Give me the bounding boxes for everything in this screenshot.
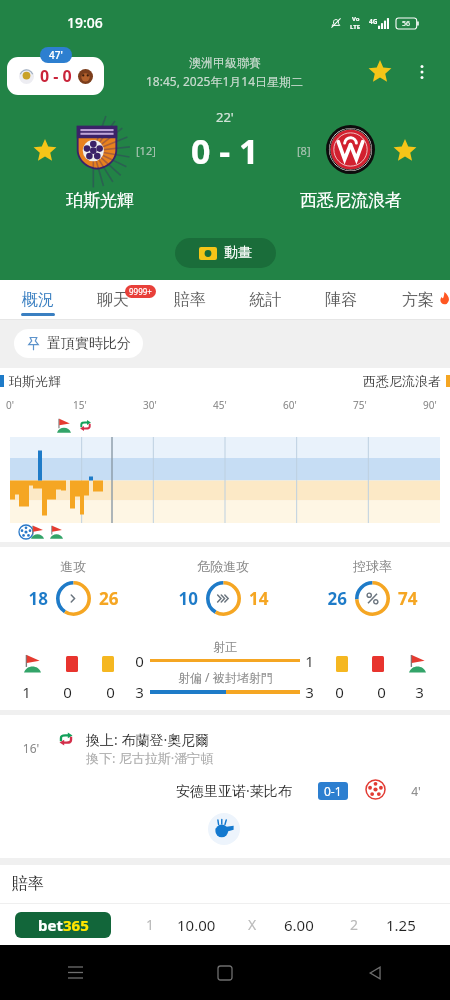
button[interactable]: Back <box>300 945 450 1000</box>
staticText: 進攻 <box>60 558 86 574</box>
button[interactable]: 動畫 <box>175 238 276 268</box>
staticText: 16' <box>18 740 44 756</box>
staticText: 陣容 <box>325 290 357 310</box>
staticText: 4G <box>369 17 378 26</box>
staticText: 56 <box>402 19 411 29</box>
staticText: 控球率 <box>353 558 392 574</box>
staticText: Vo <box>352 15 360 23</box>
button[interactable]: 賠率 <box>160 280 220 320</box>
button[interactable]: 危險進攻 <box>153 556 293 626</box>
staticText: 1 <box>16 682 37 702</box>
staticText: 6.00 <box>284 915 314 935</box>
staticText: 1 <box>146 915 155 934</box>
button[interactable]: 聊天 <box>83 280 143 320</box>
staticText: 置頂實時比分 <box>47 335 131 353</box>
staticText: LTE <box>350 23 361 31</box>
staticText: 14 <box>249 587 275 610</box>
staticText: 30' <box>143 398 157 412</box>
staticText: 0' <box>6 398 14 412</box>
staticText: 動畫 <box>224 244 252 262</box>
button[interactable]: 方案 <box>388 280 448 320</box>
staticText: 18 <box>22 587 48 610</box>
staticText: 統計 <box>249 290 281 310</box>
button[interactable]: Favourite <box>366 58 394 86</box>
button[interactable]: 控球率 <box>302 556 442 626</box>
staticText: 1.25 <box>386 915 416 935</box>
staticText: 方案 <box>402 290 434 310</box>
staticText: 換上: 布蘭登·奧尼爾 <box>86 730 210 749</box>
staticText: 珀斯光輝 <box>66 190 134 211</box>
staticText: 22' <box>216 108 234 126</box>
staticText: 0 <box>329 682 350 702</box>
staticText: 1 <box>299 651 320 671</box>
button[interactable]: 進攻 <box>3 556 143 626</box>
staticText: 0 <box>129 651 150 671</box>
staticText: [8] <box>297 143 311 158</box>
staticText: 珀斯光輝 <box>9 373 61 389</box>
button[interactable]: Recent apps <box>0 945 150 1000</box>
button[interactable]: More options <box>408 58 436 86</box>
staticText: 澳洲甲級聯賽 <box>189 55 261 70</box>
button[interactable]: 統計 <box>235 280 295 320</box>
staticText: 9999+ <box>129 286 152 297</box>
staticText: 0 <box>100 682 121 702</box>
staticText: 換下: 尼古拉斯·潘宁頓 <box>86 749 214 767</box>
staticText: 2 <box>350 915 359 934</box>
staticText: [12] <box>136 143 156 158</box>
staticText: 0-1 <box>324 783 342 799</box>
staticText: 危險進攻 <box>197 558 249 574</box>
button[interactable]: 概況 <box>8 280 68 320</box>
staticText: 0 - 0 <box>40 65 72 87</box>
staticText: 西悉尼流浪者 <box>363 373 441 389</box>
button[interactable]: Home <box>150 945 300 1000</box>
staticText: 19:06 <box>67 13 103 32</box>
staticText: 賠率 <box>12 874 44 894</box>
staticText: 26 <box>321 587 347 610</box>
staticText: 18:45, 2025年1月14日星期二 <box>146 73 304 89</box>
staticText: 0 <box>57 682 78 702</box>
staticText: 0 <box>371 682 392 702</box>
staticText: 概況 <box>22 290 54 310</box>
staticText: 75' <box>353 398 367 412</box>
staticText: 4' <box>403 783 429 799</box>
staticText: 射偏 / 被封堵射門 <box>178 669 273 685</box>
staticText: bet <box>38 915 63 935</box>
staticText: 60' <box>283 398 297 412</box>
staticText: 74 <box>398 587 424 610</box>
staticText: X <box>248 915 257 934</box>
staticText: 3 <box>409 682 430 702</box>
button[interactable]: 0 - 0 <box>7 57 104 95</box>
staticText: 射正 <box>213 639 237 654</box>
staticText: 90' <box>423 398 437 412</box>
staticText: 45' <box>213 398 227 412</box>
staticText: 10 <box>172 587 198 610</box>
button[interactable]: 陣容 <box>311 280 371 320</box>
staticText: 47' <box>49 48 63 62</box>
staticText: 365 <box>63 915 89 935</box>
staticText: 0 - 1 <box>191 128 259 174</box>
staticText: 10.00 <box>177 915 216 935</box>
staticText: 3 <box>129 682 150 702</box>
button[interactable]: 置頂實時比分 <box>14 329 143 358</box>
staticText: 賠率 <box>174 290 206 310</box>
staticText: 26 <box>99 587 125 610</box>
staticText: 西悉尼流浪者 <box>300 190 402 211</box>
staticText: 聊天 <box>97 290 129 310</box>
staticText: 3 <box>299 682 320 702</box>
staticText: 安德里亚诺·莱比布 <box>176 781 292 800</box>
button[interactable]: bet <box>0 904 450 945</box>
staticText: 15' <box>73 398 87 412</box>
